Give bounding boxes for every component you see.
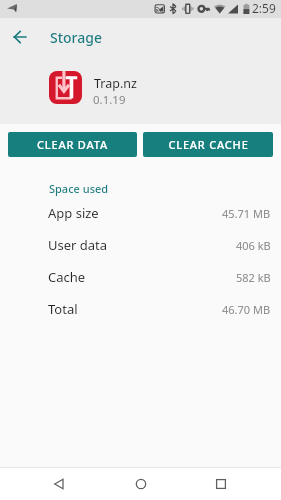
staticText: Storage [50, 28, 102, 47]
staticText: CLEAR CACHE [168, 137, 249, 152]
staticText: 582 kB [236, 270, 271, 285]
staticText: Trap.nz [94, 75, 137, 92]
button[interactable]: App size [0, 197, 281, 229]
staticText: User data [48, 236, 108, 254]
button[interactable]: Back [8, 25, 32, 49]
staticText: Cache [48, 268, 86, 286]
button[interactable]: CLEAR CACHE [143, 132, 273, 157]
button[interactable]: Recent apps [203, 468, 239, 500]
button[interactable]: Home [123, 468, 159, 500]
staticText: 2:59 [252, 0, 276, 16]
staticText: 406 kB [236, 238, 271, 253]
button[interactable]: CLEAR DATA [8, 132, 137, 157]
staticText: CLEAR DATA [37, 137, 108, 152]
staticText: 0.1.19 [93, 92, 126, 108]
staticText: App size [48, 204, 99, 222]
staticText: Total [48, 300, 78, 318]
staticText: 45.71 MB [222, 206, 271, 221]
staticText: Space used [49, 181, 109, 196]
button[interactable]: Total [0, 293, 281, 325]
staticText: 46.70 MB [222, 302, 271, 317]
button[interactable]: Cache [0, 261, 281, 293]
button[interactable]: User data [0, 229, 281, 261]
button[interactable]: Back [41, 468, 77, 500]
